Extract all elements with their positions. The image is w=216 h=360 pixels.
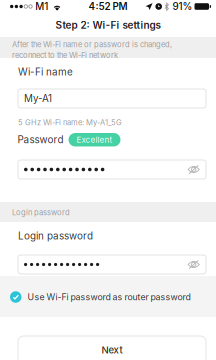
button[interactable]: Next — [18, 336, 206, 360]
button[interactable]: Show login password — [187, 259, 200, 270]
staticText: reconnect to the Wi-Fi network — [12, 51, 118, 60]
staticText: Login password — [12, 208, 70, 217]
button[interactable]: Step 2: Wi-Fi settings — [0, 13, 216, 37]
button[interactable]: Use Wi-Fi password as router password — [0, 283, 216, 311]
staticText: 91% — [172, 0, 192, 12]
staticText: Excellent — [76, 135, 112, 145]
staticText: After the Wi-Fi name or password is chan… — [12, 40, 172, 49]
staticText: Step 2: Wi-Fi settings — [55, 19, 160, 31]
staticText: M1 — [35, 0, 48, 12]
staticText: Next — [101, 344, 122, 356]
staticText: Password — [17, 134, 63, 146]
button[interactable]: Show password — [187, 164, 200, 175]
staticText: Use Wi-Fi password as router password — [27, 292, 190, 302]
staticText: 5 GHz Wi-Fi name: My-A1_5G — [18, 118, 122, 127]
staticText: My-A1 — [24, 92, 52, 104]
staticText: 4:52 PM — [88, 0, 127, 12]
staticText: Wi-Fi name — [18, 66, 73, 78]
staticText: Login password — [18, 230, 93, 242]
